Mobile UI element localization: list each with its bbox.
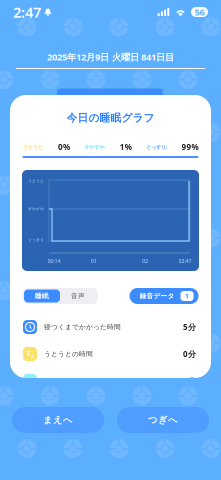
staticText: 00:14: [47, 257, 60, 265]
button[interactable]: z: [10, 367, 211, 394]
button[interactable]: 睡眠: [24, 289, 60, 302]
button[interactable]: 録音データ: [129, 288, 198, 304]
staticText: うとうと:: [22, 143, 43, 151]
staticText: 2:47: [13, 2, 41, 22]
staticText: 01: [91, 257, 97, 265]
staticText: 2025年12月9日 火曜日 841日目: [47, 51, 174, 63]
staticText: 1%: [120, 142, 132, 152]
button[interactable]: 音声: [60, 289, 96, 302]
staticText: ぐっすり:: [146, 143, 167, 151]
staticText: つぎへ: [148, 414, 178, 426]
staticText: 録音データ: [139, 292, 174, 300]
staticText: z: [27, 375, 31, 386]
button[interactable]: 寝つくまでかかった時間: [10, 313, 211, 340]
staticText: 音声: [71, 292, 85, 300]
staticText: まえへ: [43, 414, 73, 426]
staticText: 02:47: [178, 257, 191, 265]
staticText: 99%: [181, 142, 198, 152]
button[interactable]: z: [10, 340, 211, 367]
staticText: z: [26, 347, 30, 358]
button[interactable]: つぎへ: [117, 407, 209, 433]
button[interactable]: まえへ: [12, 407, 104, 433]
staticText: 2分: [183, 376, 196, 386]
staticText: うとうとの時間: [44, 350, 93, 358]
staticText: 02: [142, 257, 148, 265]
staticText: 今日の睡眠グラフ: [66, 111, 154, 124]
staticText: 0分: [183, 349, 196, 359]
staticText: うとうと: [28, 178, 44, 183]
staticText: 寝つくまでかかった時間: [44, 323, 121, 331]
staticText: 56: [194, 6, 204, 18]
staticText: 睡眠: [35, 292, 49, 300]
staticText: 0%: [58, 142, 70, 152]
staticText: すやすや: [28, 206, 44, 211]
staticText: 5分: [183, 322, 196, 332]
staticText: ぐっすり: [28, 237, 44, 242]
staticText: すやすや:: [84, 143, 105, 151]
staticText: すやすやの時間: [44, 377, 93, 385]
staticText: z: [31, 352, 34, 360]
staticText: 1: [185, 292, 189, 300]
